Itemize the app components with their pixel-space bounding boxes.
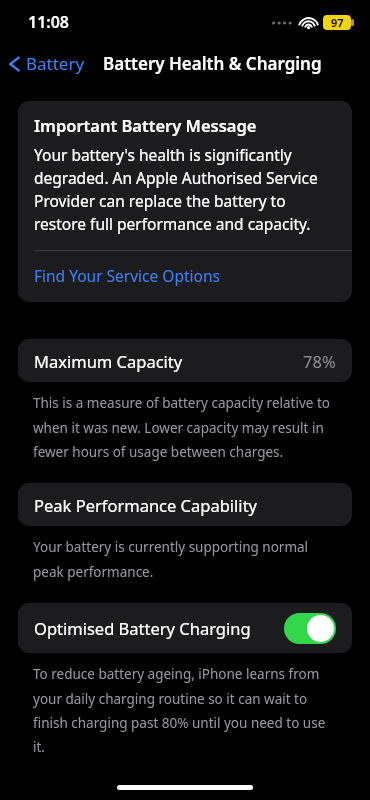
staticText: Find Your Service Options: [34, 265, 220, 286]
staticText: 11:08: [28, 11, 70, 33]
staticText: Peak Performance Capability: [34, 494, 257, 516]
button[interactable]: Optimised Battery Charging: [18, 603, 352, 653]
button[interactable]: Maximum Capacity: [18, 339, 352, 382]
button[interactable]: Find Your Service Options: [18, 251, 352, 302]
button[interactable]: Battery: [0, 48, 91, 79]
staticText: Battery Health & Charging: [103, 52, 322, 75]
staticText: This is a measure of battery capacity re…: [33, 394, 340, 461]
button[interactable]: Peak Performance Capability: [18, 483, 352, 526]
staticText: Optimised Battery Charging: [34, 617, 251, 639]
staticText: To reduce battery ageing, iPhone learns …: [33, 665, 340, 756]
staticText: Battery: [26, 52, 85, 75]
staticText: Maximum Capacity: [34, 350, 183, 372]
staticText: 78%: [303, 350, 336, 372]
staticText: 97: [331, 15, 344, 30]
button[interactable]: Optimised Battery Charging toggle, on: [284, 613, 336, 644]
staticText: Your battery is currently supporting nor…: [33, 538, 340, 581]
staticText: Your battery's health is significantly d…: [34, 144, 336, 235]
staticText: Important Battery Message: [34, 114, 257, 136]
